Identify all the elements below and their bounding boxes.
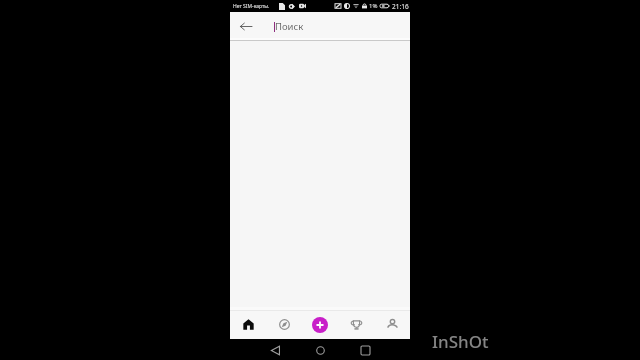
button[interactable]: Recents <box>357 342 373 358</box>
staticText: 1% <box>369 2 378 10</box>
staticText: 21:16 <box>392 2 409 11</box>
button[interactable]: Add <box>312 317 328 333</box>
staticText: Поиск <box>275 20 304 33</box>
button[interactable]: Home <box>312 342 328 358</box>
staticText: Нет SIM-карты. <box>233 3 270 10</box>
button[interactable]: Back <box>232 12 259 41</box>
button[interactable]: Explore <box>266 310 302 339</box>
button[interactable]: Trophy <box>338 310 374 339</box>
button[interactable]: Profile <box>374 310 410 339</box>
button[interactable]: Home <box>230 310 266 339</box>
staticText: InShOt <box>432 330 489 353</box>
button[interactable]: Back <box>267 342 283 358</box>
